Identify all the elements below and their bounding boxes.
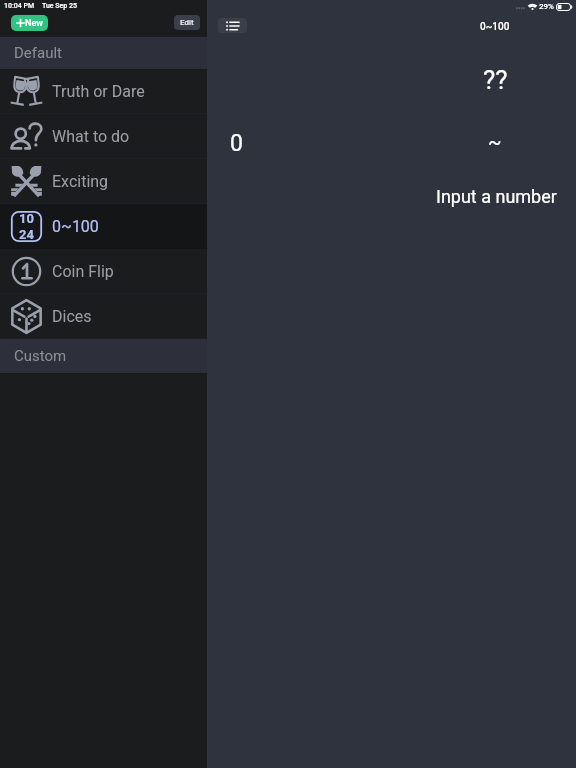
- staticText: 10: [19, 211, 34, 226]
- staticText: What to do: [52, 127, 130, 146]
- button[interactable]: 10: [0, 204, 207, 249]
- staticText: Default: [14, 44, 62, 62]
- staticText: Coin Flip: [52, 262, 114, 281]
- staticText: Input a number: [436, 186, 557, 207]
- button[interactable]: Exciting: [0, 159, 207, 204]
- button[interactable]: Dices: [0, 294, 207, 339]
- button[interactable]: Edit: [174, 15, 200, 30]
- staticText: Dices: [52, 307, 92, 326]
- staticText: ~: [488, 130, 502, 153]
- button[interactable]: What to do: [0, 114, 207, 159]
- staticText: 10:04 PM: [4, 2, 35, 10]
- staticText: Custom: [14, 347, 67, 365]
- staticText: Tue Sep 25: [42, 2, 77, 10]
- button[interactable]: Truth or Dare: [0, 69, 207, 114]
- staticText: ??: [483, 65, 508, 95]
- staticText: New: [25, 18, 43, 29]
- button[interactable]: Coin Flip: [0, 249, 207, 294]
- staticText: Edit: [180, 18, 194, 27]
- staticText: 29%: [539, 2, 554, 11]
- button[interactable]: New: [11, 15, 48, 31]
- staticText: Truth or Dare: [52, 82, 145, 101]
- staticText: 0~100: [480, 21, 510, 33]
- staticText: Exciting: [52, 172, 109, 191]
- staticText: 0~100: [52, 217, 99, 236]
- staticText: 0: [230, 130, 243, 157]
- button[interactable]: Show list: [218, 18, 247, 33]
- staticText: 24: [19, 227, 34, 242]
